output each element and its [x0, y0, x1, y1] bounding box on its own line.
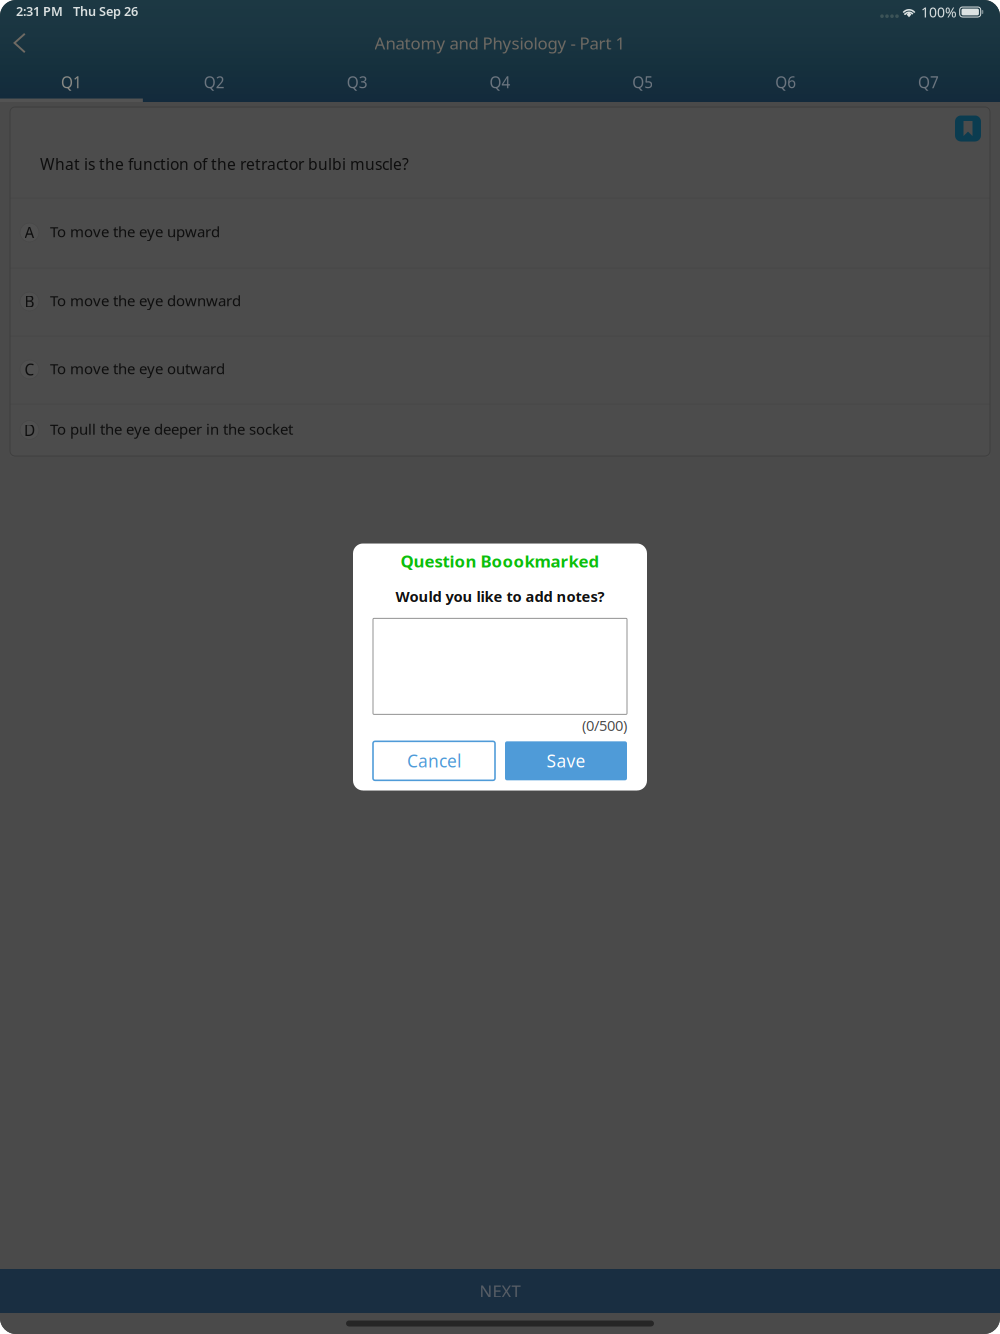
button[interactable]: Q3 [286, 62, 429, 102]
button[interactable]: C [10, 336, 990, 403]
staticText: NEXT [479, 1280, 520, 1302]
staticText: Question Boookmarked [400, 549, 599, 572]
staticText: Q6 [775, 72, 796, 93]
staticText: Cancel [407, 749, 461, 773]
staticText: To move the eye downward [50, 290, 241, 311]
staticText: Q1 [61, 72, 82, 93]
button[interactable]: Bookmark [955, 115, 981, 141]
button[interactable]: Q4 [429, 62, 571, 102]
button[interactable]: D [10, 404, 990, 456]
staticText: (0/500) [582, 715, 627, 735]
button[interactable]: Q7 [857, 62, 1000, 102]
staticText: D [24, 420, 35, 440]
button[interactable]: Save [505, 741, 627, 780]
button[interactable]: Cancel [373, 741, 495, 780]
button[interactable]: NEXT [0, 1269, 1000, 1313]
staticText: What is the function of the retractor bu… [40, 153, 409, 174]
staticText: Q4 [489, 72, 510, 93]
staticText: Save [546, 749, 585, 773]
staticText: 2:31 PM [16, 2, 63, 20]
staticText: Thu Sep 26 [73, 2, 138, 20]
staticText: To pull the eye deeper in the socket [50, 419, 293, 439]
button[interactable]: Q1 [0, 62, 143, 102]
staticText: A [24, 222, 34, 243]
button[interactable]: Back [0, 24, 36, 62]
staticText: C [24, 359, 34, 380]
button[interactable]: A [10, 198, 990, 267]
staticText: To move the eye outward [50, 358, 225, 379]
staticText: Anatomy and Physiology - Part 1 [374, 32, 625, 54]
staticText: Would you like to add notes? [395, 586, 604, 606]
button[interactable]: B [10, 268, 990, 335]
staticText: To move the eye upward [50, 221, 220, 242]
staticText: Q3 [347, 72, 368, 93]
staticText: B [24, 291, 34, 312]
button[interactable]: Q5 [571, 62, 714, 102]
staticText: Q2 [204, 72, 225, 93]
staticText: 100% [921, 2, 957, 22]
button[interactable]: Q6 [714, 62, 857, 102]
staticText: Q7 [918, 72, 939, 93]
button[interactable]: Q2 [143, 62, 286, 102]
staticText: Q5 [632, 72, 653, 93]
